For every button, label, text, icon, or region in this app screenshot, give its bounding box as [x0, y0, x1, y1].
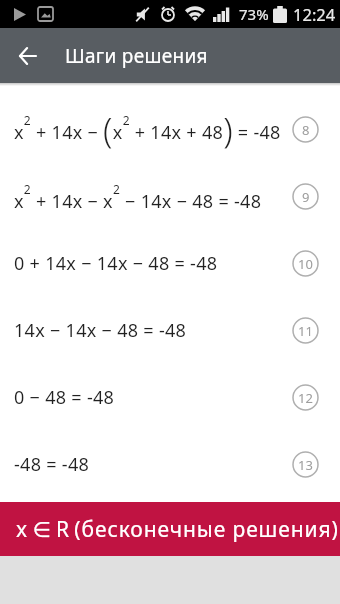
staticText: 0 − 48 = -48 [14, 385, 292, 410]
staticText: 10 [298, 255, 313, 273]
staticText: -48 = -48 [14, 452, 292, 477]
staticText: 12 [298, 389, 313, 407]
staticText: 13 [298, 456, 313, 474]
button[interactable]: x ∈ R (бесконечные решения) [0, 502, 340, 556]
staticText: 11 [298, 322, 313, 340]
button[interactable]: 14x − 14x − 48 = -48 [14, 297, 319, 364]
button[interactable]: -48 = -48 [14, 431, 319, 498]
staticText: x2 + 14x − (x2 + 14x + 48) = -48 [14, 107, 292, 153]
staticText: x ∈ R (бесконечные решения) [16, 515, 339, 544]
staticText: 73% [239, 4, 269, 24]
button[interactable]: x2 + 14x − (x2 + 14x + 48) = -48 [14, 96, 319, 163]
staticText: Шаги решения [65, 43, 208, 69]
staticText: 12:24 [293, 3, 336, 25]
staticText: 9 [302, 188, 310, 206]
button[interactable]: x2 + 14x − x2 − 14x − 48 = -48 [14, 163, 319, 230]
button[interactable]: 0 + 14x − 14x − 48 = -48 [14, 230, 319, 297]
staticText: 8 [302, 121, 310, 139]
button[interactable] [0, 28, 55, 83]
staticText: 14x − 14x − 48 = -48 [14, 318, 292, 343]
staticText: 0 + 14x − 14x − 48 = -48 [14, 251, 292, 276]
staticText: x2 + 14x − x2 − 14x − 48 = -48 [14, 181, 292, 213]
button[interactable]: 0 − 48 = -48 [14, 364, 319, 431]
